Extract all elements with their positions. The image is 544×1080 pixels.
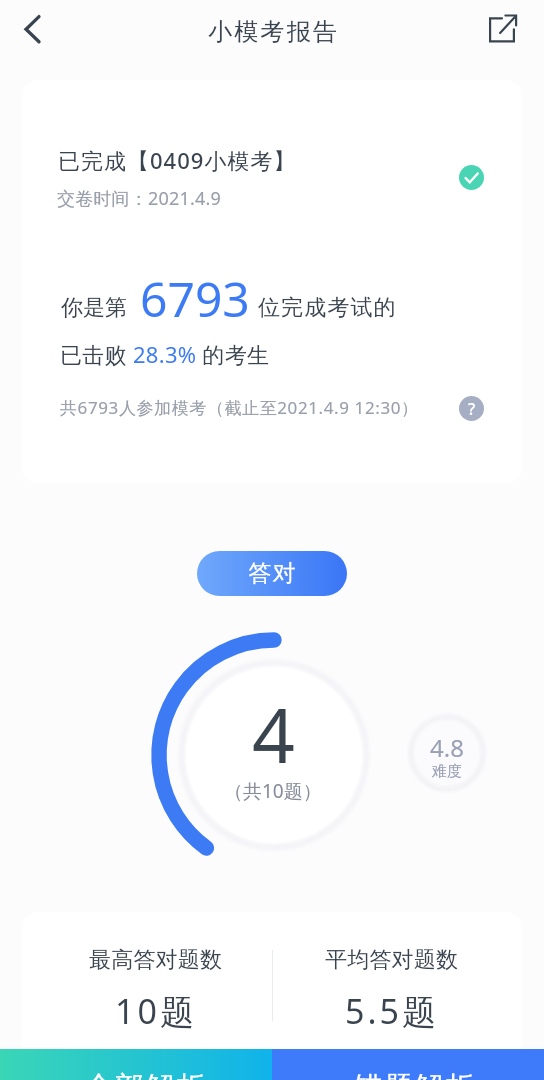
staticText: 4.8	[430, 731, 464, 764]
staticText: 小模考报告	[207, 17, 338, 47]
button[interactable]: 答对	[197, 551, 347, 596]
staticText: 答对	[248, 559, 296, 588]
button[interactable]: Share	[481, 7, 525, 51]
button[interactable]: Back	[9, 7, 53, 51]
staticText: 最高答对题数	[89, 946, 223, 974]
staticText: 错题解析	[353, 1069, 475, 1080]
staticText: ?	[468, 398, 476, 420]
staticText: 位完成考试的	[258, 294, 397, 322]
staticText: 全部解析	[84, 1069, 206, 1080]
staticText: 5.5题	[345, 988, 440, 1034]
staticText: 已完成【0409小模考】	[58, 145, 297, 175]
staticText: 你是第	[61, 294, 127, 322]
button[interactable]: Help	[459, 396, 484, 421]
staticText: 6793	[140, 266, 250, 331]
staticText: 共6793人参加模考（截止至2021.4.9 12:30）	[60, 396, 419, 419]
staticText: 10题	[115, 988, 197, 1034]
staticText: 已击败 28.3% 的考生	[60, 339, 270, 369]
staticText: 4	[252, 683, 295, 785]
staticText: （共10题）	[224, 778, 322, 804]
staticText: 难度	[432, 762, 462, 781]
staticText: 交卷时间：2021.4.9	[57, 186, 222, 211]
button[interactable]: 错题解析	[272, 1049, 544, 1080]
button[interactable]: 全部解析	[0, 1049, 272, 1080]
staticText: 平均答对题数	[325, 946, 459, 974]
